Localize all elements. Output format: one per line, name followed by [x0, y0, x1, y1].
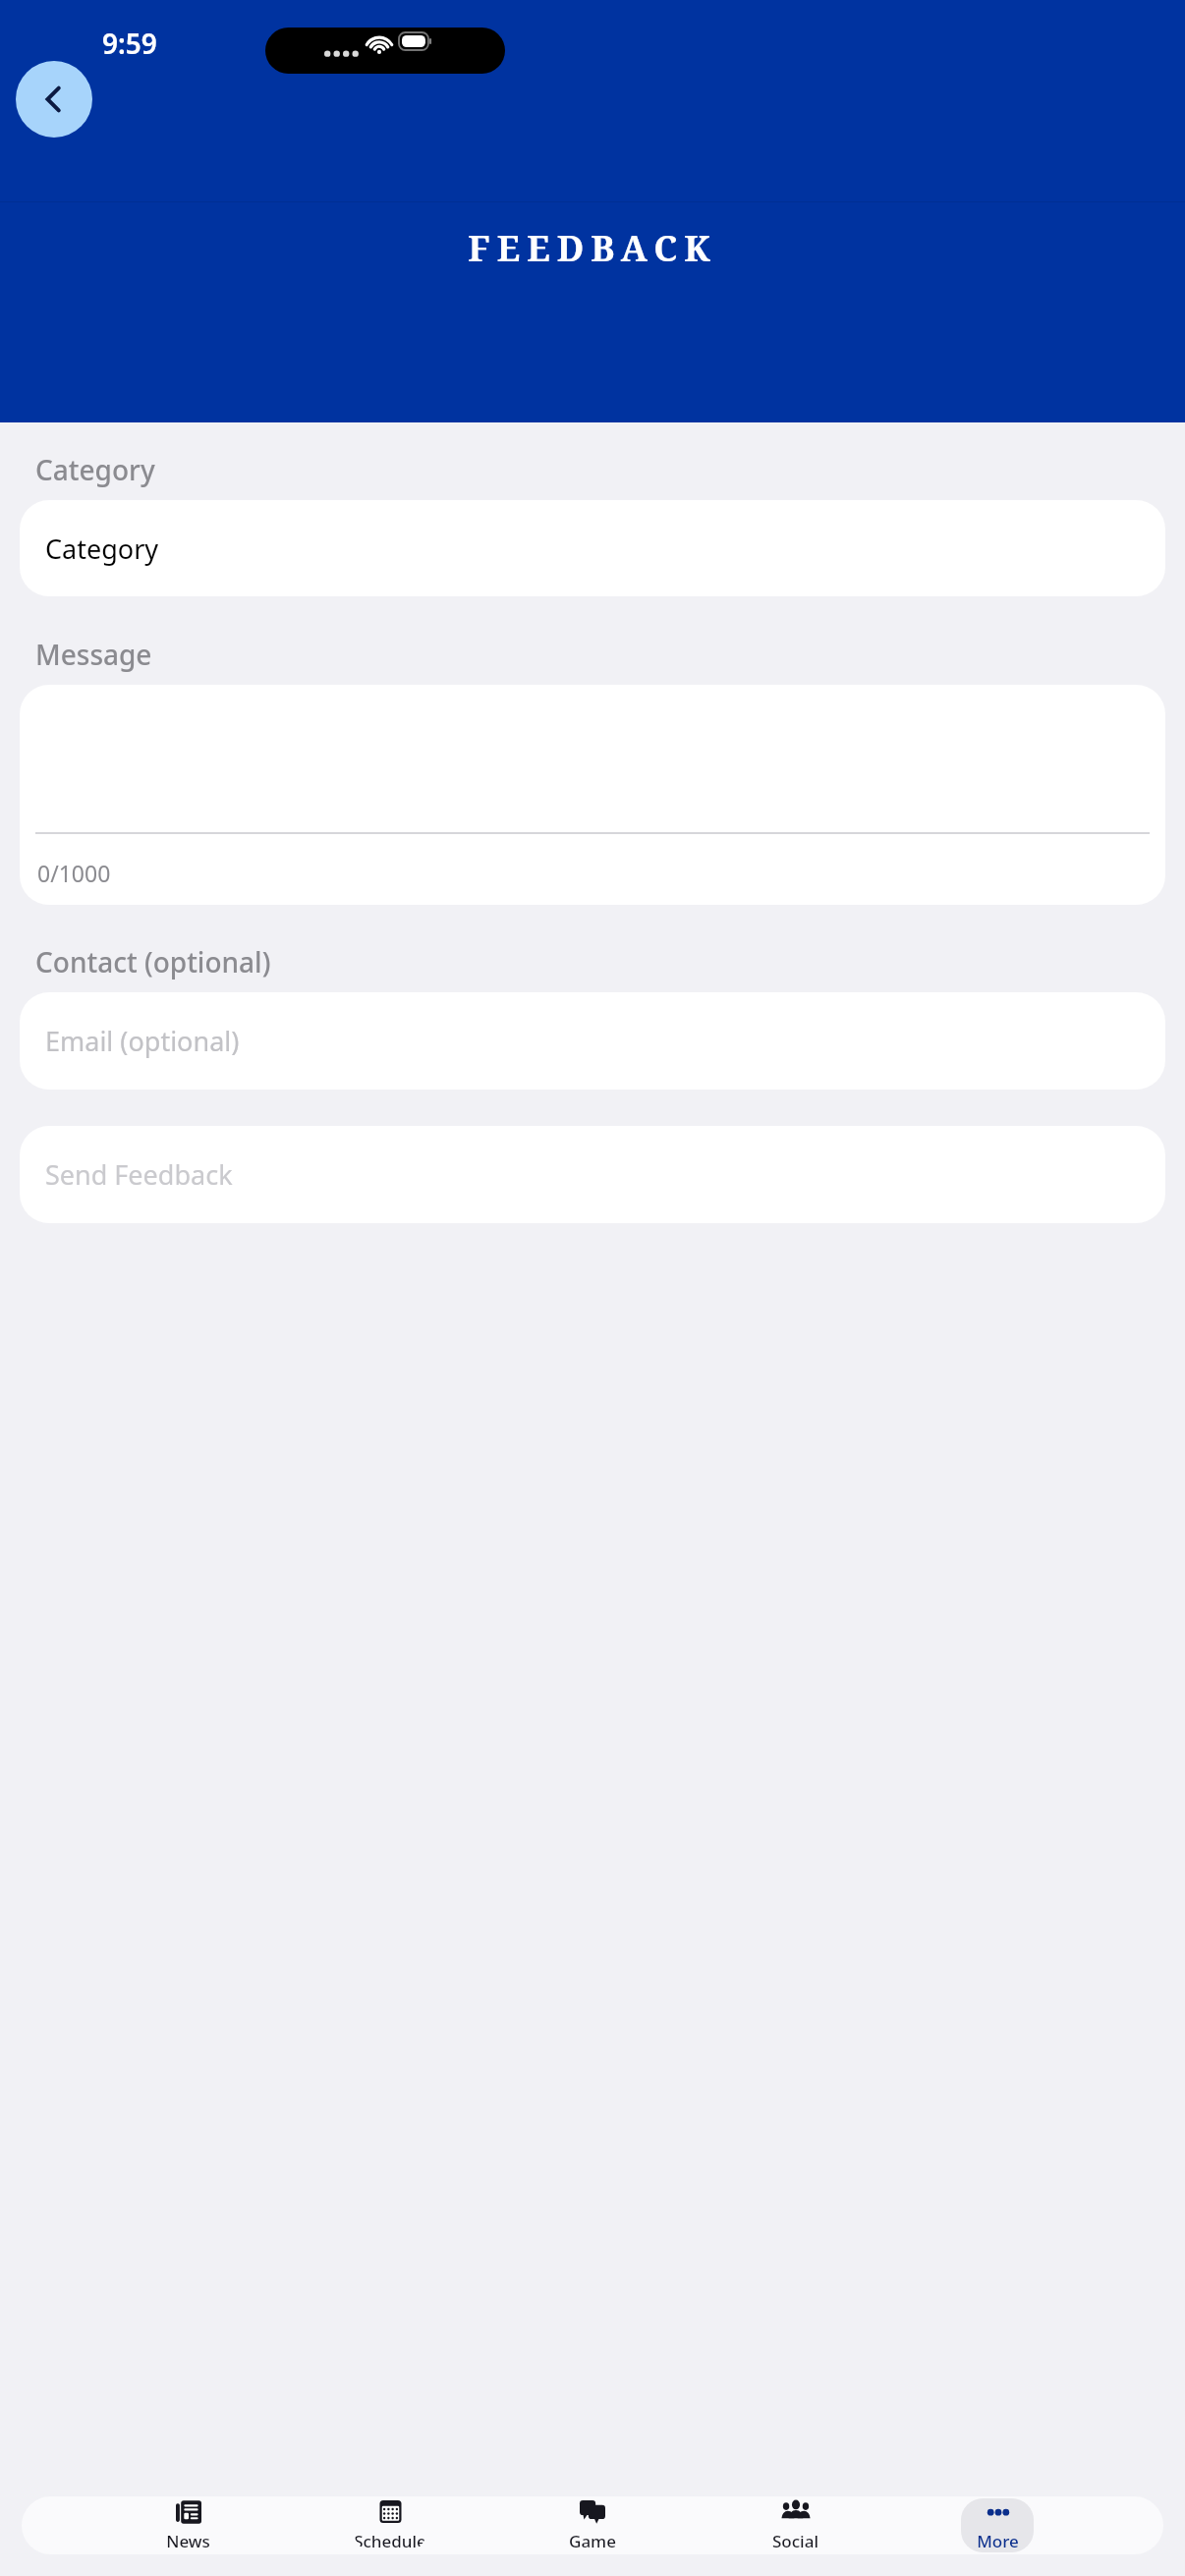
- button[interactable]: Email (optional): [20, 992, 1165, 1090]
- button[interactable]: 0/1000: [20, 685, 1165, 905]
- staticText: Email (optional): [45, 1023, 240, 1059]
- staticText: 9:59: [102, 25, 157, 62]
- button[interactable]: Send Feedback: [20, 1126, 1165, 1223]
- staticText: Category: [35, 451, 155, 488]
- staticText: Schedules: [354, 2530, 426, 2552]
- staticText: Send Feedback: [45, 1156, 233, 1193]
- button[interactable]: Schedules: [354, 2498, 426, 2552]
- button[interactable]: Back: [16, 61, 92, 138]
- button[interactable]: Game Chat: [556, 2498, 629, 2552]
- staticText: Category: [45, 531, 159, 567]
- staticText: 0/1000: [37, 858, 111, 888]
- staticText: Message: [35, 636, 152, 673]
- staticText: Social: [772, 2530, 818, 2552]
- staticText: More: [977, 2530, 1019, 2552]
- button[interactable]: More: [961, 2498, 1034, 2552]
- button[interactable]: Category: [20, 500, 1165, 596]
- button[interactable]: News: [151, 2498, 224, 2552]
- staticText: News: [166, 2530, 210, 2552]
- button[interactable]: Social: [759, 2498, 831, 2552]
- staticText: Contact (optional): [35, 943, 271, 980]
- staticText: Game Chat: [556, 2530, 629, 2552]
- staticText: FEEDBACK: [0, 224, 1185, 272]
